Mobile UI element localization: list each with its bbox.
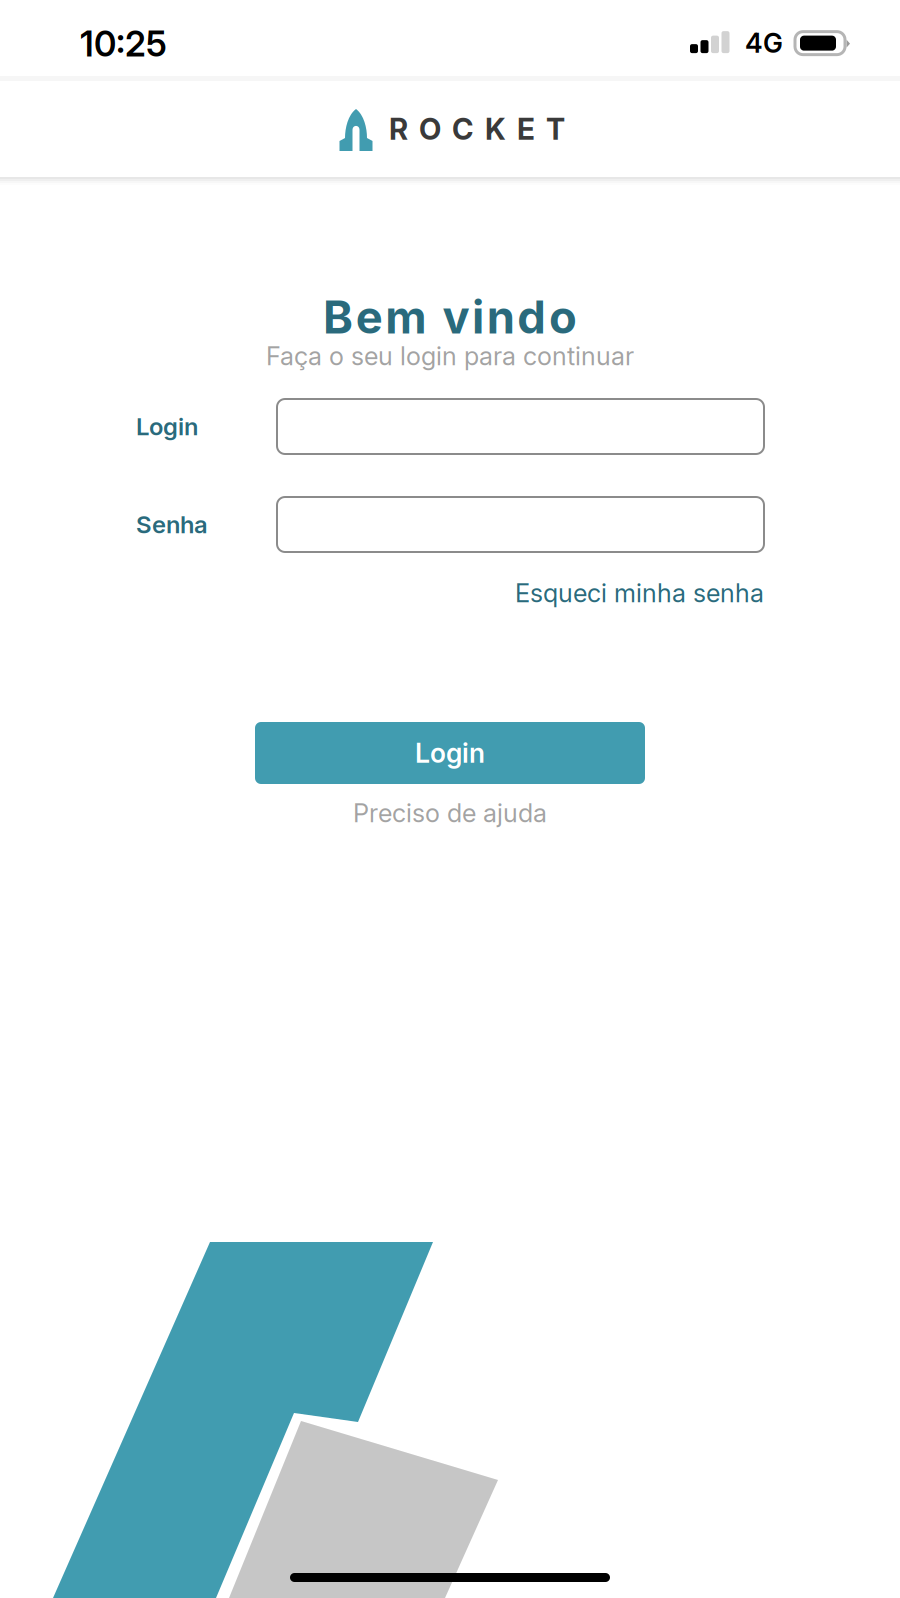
staticText: Faça o seu login para continuar (266, 341, 634, 371)
staticText: Preciso de ajuda (353, 798, 547, 828)
staticText: Esqueci minha senha (515, 578, 764, 608)
staticText: Bem vindo (323, 290, 577, 344)
staticText: Senha (136, 510, 208, 539)
staticText: Login (415, 737, 485, 769)
staticText: ROCKET (389, 111, 565, 147)
button[interactable]: Esqueci minha senha (136, 581, 764, 605)
staticText: Login (136, 412, 198, 441)
staticText: 10:25 (80, 23, 167, 65)
button[interactable]: Login (255, 722, 645, 784)
button[interactable]: Preciso de ajuda (353, 801, 547, 825)
staticText: 4G (745, 27, 783, 59)
